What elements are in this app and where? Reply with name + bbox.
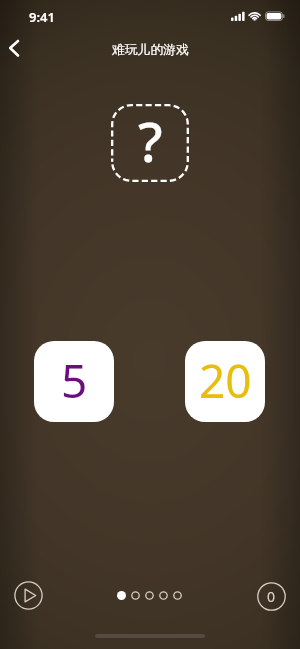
staticText: ? bbox=[138, 103, 163, 178]
button[interactable]: Back bbox=[0, 31, 34, 65]
staticText: 5 bbox=[61, 349, 88, 412]
staticText: 20 bbox=[199, 349, 252, 412]
staticText: 难玩儿的游戏 bbox=[112, 42, 189, 58]
button[interactable]: 20 bbox=[185, 341, 265, 422]
button[interactable]: Unknown card bbox=[111, 104, 189, 182]
button[interactable]: Play bbox=[14, 581, 43, 610]
button[interactable]: Score bbox=[257, 582, 286, 611]
button[interactable]: 5 bbox=[34, 341, 114, 422]
staticText: 9:41 bbox=[29, 8, 55, 26]
staticText: 0 bbox=[267, 587, 276, 606]
